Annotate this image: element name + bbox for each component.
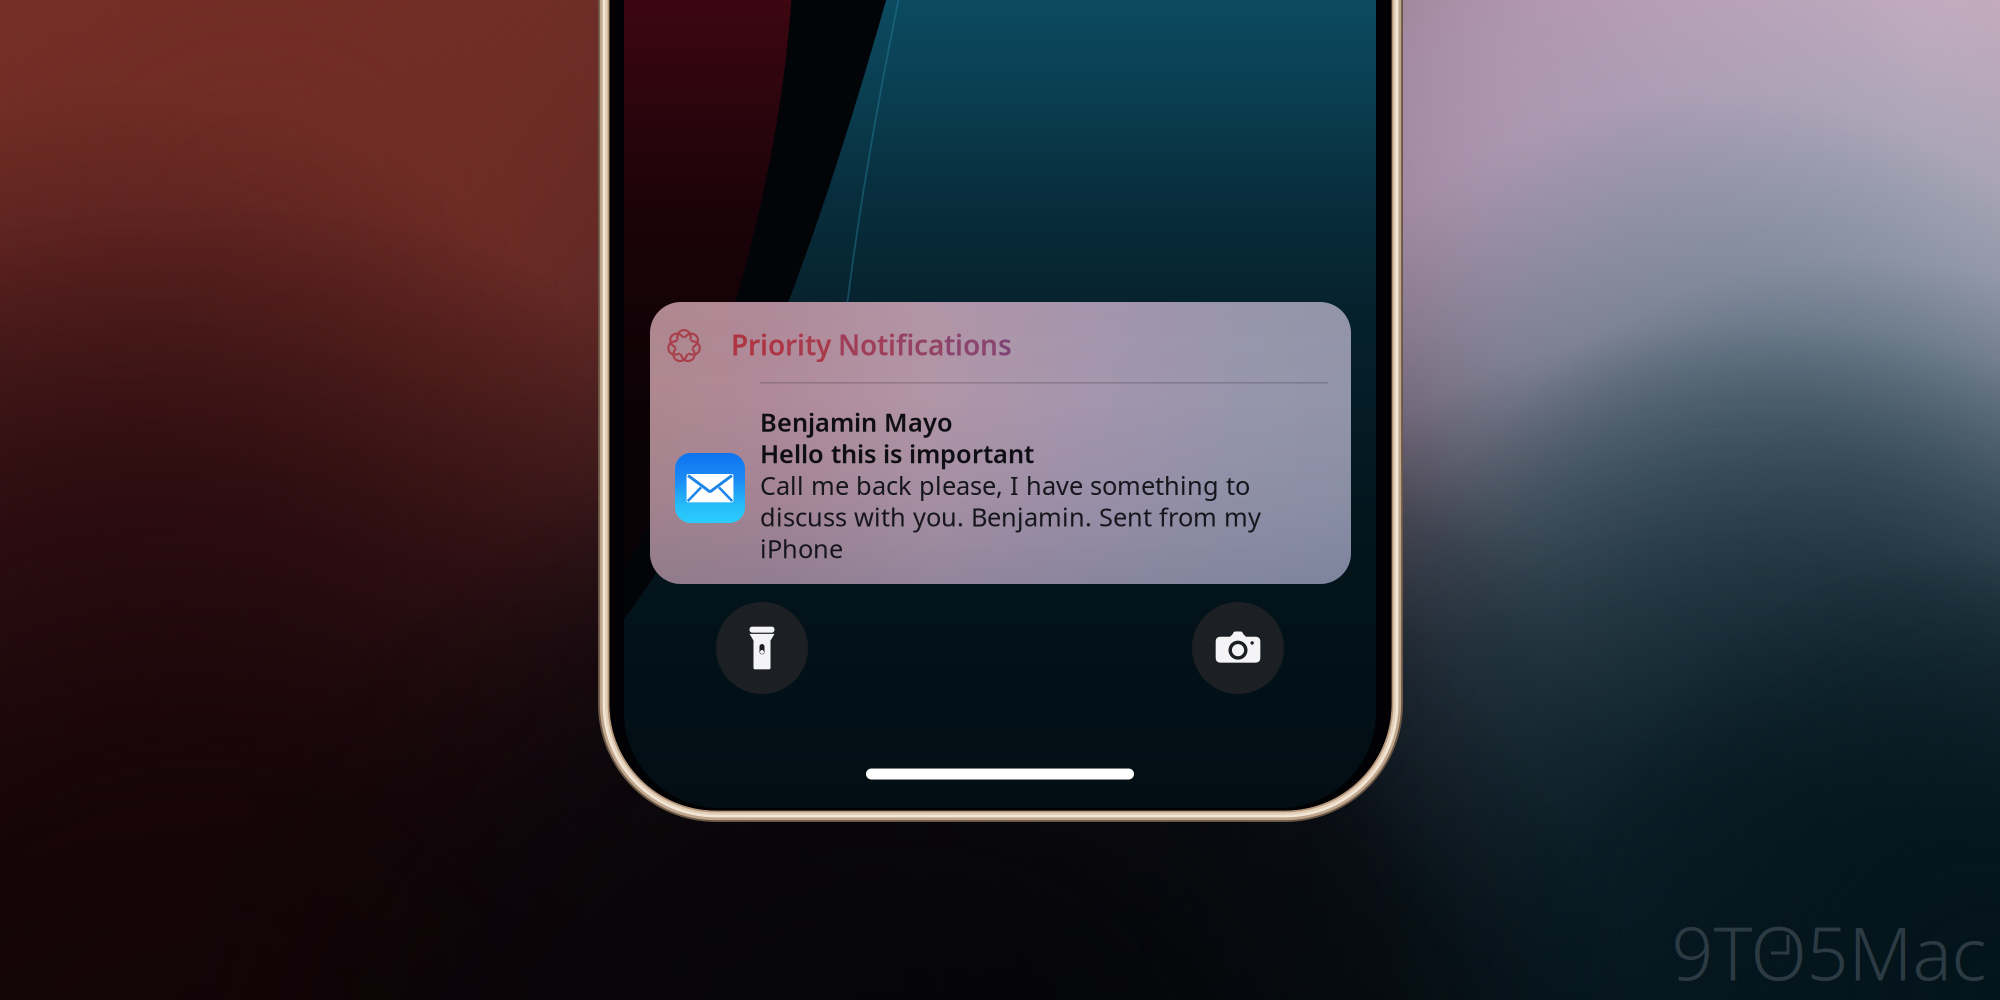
staticText: iPhone — [760, 532, 843, 565]
staticText: Benjamin Mayo — [760, 405, 953, 439]
staticText: Call me back please, I have something to — [760, 468, 1250, 502]
staticText: fica — [896, 326, 944, 363]
staticText: Hello this is important — [760, 437, 1034, 470]
staticText: Noti — [838, 326, 896, 363]
staticText: 9TO5Mac — [1671, 903, 1986, 1000]
staticText: s — [998, 326, 1012, 363]
staticText: discuss with you. Benjamin. Sent from my — [760, 500, 1261, 533]
staticText: Prio — [731, 326, 785, 363]
button[interactable]: Camera — [1192, 602, 1284, 694]
button[interactable]: Flashlight — [716, 602, 808, 694]
staticText: tion — [944, 326, 998, 363]
staticText: rity — [785, 326, 831, 363]
button[interactable]: Prio — [650, 302, 1351, 584]
